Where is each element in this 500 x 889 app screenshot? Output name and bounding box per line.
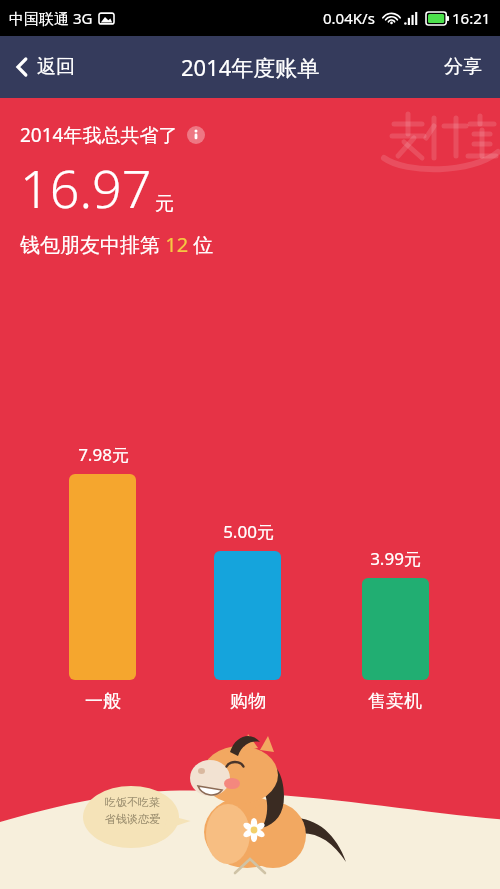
button[interactable]: 说明 [187, 126, 205, 144]
staticText: 16:21 [452, 8, 491, 28]
button[interactable]: 返回 [0, 45, 89, 89]
button[interactable] [69, 474, 136, 680]
staticText: 中国联通 3G [9, 8, 93, 28]
staticText: 7.98元 [78, 443, 129, 466]
staticText: 元 [155, 192, 174, 216]
staticText: 省钱谈恋爱 [105, 812, 160, 826]
staticText: 返回 [37, 55, 75, 79]
button[interactable] [214, 551, 281, 680]
button[interactable] [362, 578, 429, 680]
staticText: 3.99元 [370, 547, 421, 570]
staticText: 2014年我总共省了 [20, 122, 178, 148]
staticText: 吃饭不吃菜 [105, 795, 160, 809]
button[interactable]: 分享 [426, 43, 500, 91]
staticText: 16.97 [20, 152, 152, 223]
staticText: 分享 [444, 55, 482, 79]
staticText: 2014年度账单 [181, 52, 320, 82]
staticText: 0.04K/s [323, 8, 375, 28]
staticText: 购物 [230, 690, 266, 713]
staticText: 钱包朋友中排第 12 位 [20, 231, 214, 258]
button[interactable]: 展开 [220, 850, 280, 884]
staticText: 一般 [85, 690, 121, 713]
staticText: 5.00元 [223, 520, 274, 543]
staticText: 售卖机 [368, 690, 422, 713]
